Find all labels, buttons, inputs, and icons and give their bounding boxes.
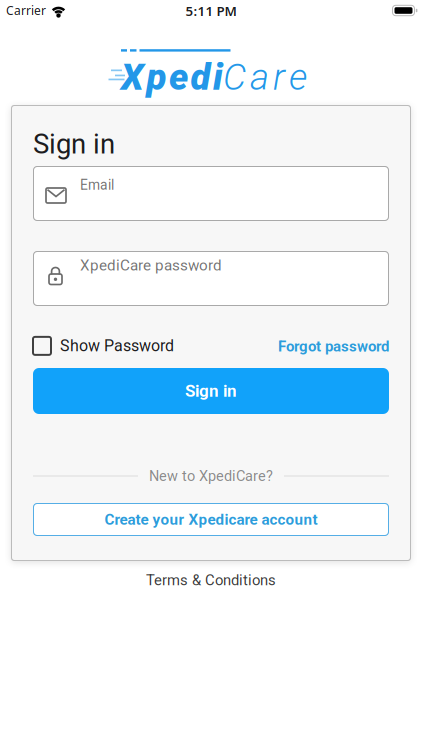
button[interactable]: Show Password	[33, 336, 174, 355]
staticText: Carrier	[6, 2, 46, 18]
staticText: Forgot password	[278, 337, 389, 355]
button[interactable]: Email	[33, 166, 389, 221]
staticText: Email	[80, 177, 114, 193]
staticText: Care	[223, 56, 307, 99]
staticText: 5:11 PM	[185, 2, 236, 20]
staticText: XpediCare password	[80, 256, 222, 274]
staticText: Show Password	[60, 336, 174, 355]
staticText: New to XpediCare?	[149, 467, 273, 484]
staticText: Sign in	[185, 381, 237, 401]
staticText: Terms & Conditions	[146, 571, 276, 589]
button[interactable]: Create your Xpedicare account	[33, 503, 389, 536]
button[interactable]: Sign in	[33, 368, 389, 414]
staticText: Create your Xpedicare account	[104, 511, 317, 528]
button[interactable]: Terms & Conditions	[0, 571, 422, 589]
button[interactable]: Forgot password	[278, 337, 389, 355]
button[interactable]: XpediCare password	[33, 251, 389, 306]
staticText: Sign in	[33, 128, 115, 160]
staticText: Xpedi	[121, 56, 223, 99]
